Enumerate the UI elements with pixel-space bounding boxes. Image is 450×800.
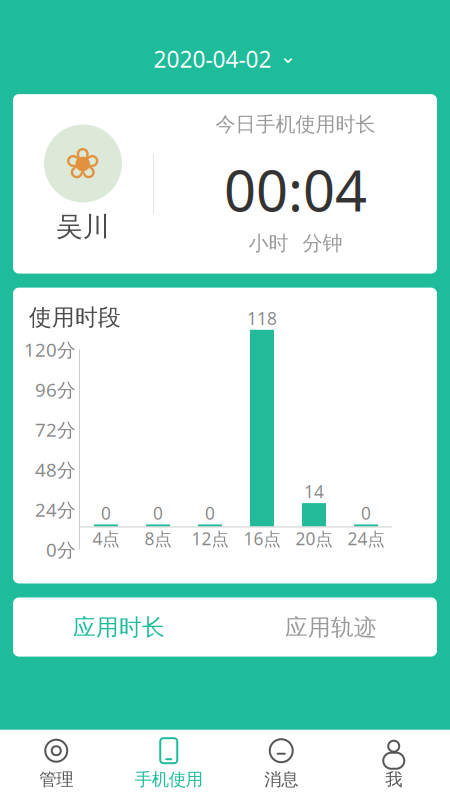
staticText: 0 — [361, 501, 371, 524]
staticText: 应用时长 — [73, 613, 165, 641]
button[interactable]: 管理 — [0, 730, 112, 800]
button[interactable]: 消息 — [225, 730, 337, 800]
staticText: 0分 — [46, 537, 76, 562]
staticText: 12点 — [191, 527, 228, 550]
button[interactable]: 2020-04-02 — [139, 36, 310, 82]
staticText: 4点 — [92, 527, 119, 550]
staticText: 应用轨迹 — [285, 613, 377, 641]
staticText: ❀ — [65, 139, 101, 188]
staticText: 手机使用 — [135, 769, 203, 790]
button[interactable]: 应用时长 — [13, 597, 225, 658]
button[interactable]: 应用轨迹 — [225, 597, 437, 658]
staticText: 96分 — [35, 377, 76, 402]
staticText: ⌄ — [279, 45, 296, 67]
button[interactable]: 手机使用 — [112, 730, 225, 800]
staticText: 120分 — [24, 337, 76, 362]
staticText: 分钟 — [302, 231, 342, 256]
staticText: 使用时段 — [29, 304, 121, 331]
staticText: 0 — [153, 501, 163, 524]
staticText: 20点 — [295, 527, 332, 550]
staticText: 14 — [304, 480, 324, 503]
staticText: 今日手机使用时长 — [215, 112, 375, 137]
staticText: 24分 — [35, 497, 76, 522]
staticText: 16点 — [243, 527, 280, 550]
staticText: 00:04 — [224, 153, 367, 227]
staticText: 8点 — [144, 527, 171, 550]
staticText: 吴川 — [56, 210, 110, 243]
button[interactable]: 我 — [337, 730, 450, 800]
staticText: 48分 — [35, 457, 76, 482]
staticText: 24点 — [347, 527, 384, 550]
staticText: 管理 — [39, 769, 73, 790]
staticText: 118 — [247, 307, 277, 330]
staticText: 小时 — [248, 231, 288, 256]
staticText: 消息 — [264, 769, 298, 790]
staticText: 72分 — [35, 417, 76, 442]
staticText: 我 — [385, 769, 402, 790]
staticText: 2020-04-02 — [153, 44, 271, 74]
staticText: 0 — [101, 501, 111, 524]
staticText: 0 — [205, 501, 215, 524]
